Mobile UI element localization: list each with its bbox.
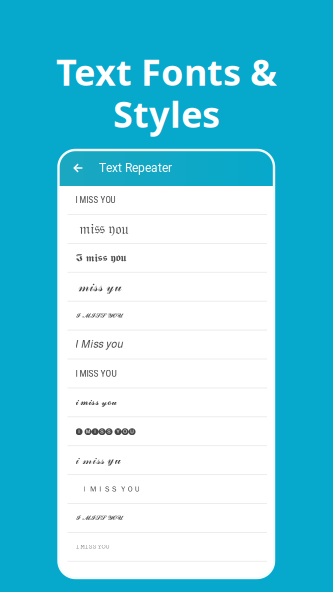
staticText: I MISS YOU <box>75 195 115 205</box>
button[interactable]: I MISS YOU <box>58 359 274 388</box>
button[interactable]: I MISS YOU <box>58 186 274 215</box>
staticText: 𝐼 𝑀𝑖𝑠𝑠 𝑦𝑜𝑢 <box>75 339 123 350</box>
staticText: 🅘 🅜🅘🅢🅢 🅨🅞🅤 <box>75 428 135 435</box>
staticText: 𝒤 𝓂𝒾𝓈𝓈 𝓎𝓄𝓊 <box>75 280 121 294</box>
button[interactable]: 𝒤 𝓂𝒾𝓈𝓈 𝓎𝓄𝓊 <box>58 273 274 302</box>
staticText: 𝔌 𝔪𝔦𝔰𝔰 𝔶𝔬𝔲 <box>75 221 128 237</box>
button[interactable]: 𝓘 𝓜𝓘𝓢𝓢 𝓨𝓞𝓤 <box>58 504 274 533</box>
staticText: Text Fonts & <box>56 48 277 96</box>
staticText: 𝙸 𝙼𝙸𝚂𝚂 𝚈𝙾𝚄 <box>75 544 109 550</box>
button[interactable]: 🅘 🅜🅘🅢🅢 🅨🅞🅤 <box>58 417 274 446</box>
button[interactable]: 𝐼 𝑀𝑖𝑠𝑠 𝑦𝑜𝑢 <box>58 330 274 359</box>
button[interactable]: 𝒾 𝓂𝒾𝓈𝓈 𝓎𝓄𝓊 <box>58 446 274 475</box>
button[interactable]: 𝓲 𝓶𝓲𝓼𝓼 𝔂𝓸𝓾 <box>58 388 274 417</box>
staticText: 𝓘 𝓜𝓘𝓢𝓢 𝓨𝓞𝓤 <box>75 312 122 319</box>
staticText: 𝓲 𝓶𝓲𝓼𝓼 𝔂𝓸𝓾 <box>75 398 116 407</box>
button[interactable]: Ｉ ＭＩＳＳ ＹＯＵ <box>58 475 274 504</box>
button[interactable]: 𝓘 𝓜𝓘𝓢𝓢 𝓨𝓞𝓤 <box>58 302 274 330</box>
staticText: Styles <box>113 90 220 138</box>
button[interactable]: 𝙸 𝙼𝙸𝚂𝚂 𝚈𝙾𝚄 <box>58 533 274 562</box>
button[interactable]: Back <box>58 150 99 186</box>
staticText: 𝕴 𝖒𝖎𝖘𝖘 𝖞𝖔𝖚 <box>75 252 126 264</box>
button[interactable]: 𝕴 𝖒𝖎𝖘𝖘 𝖞𝖔𝖚 <box>58 244 274 273</box>
staticText: Text Repeater <box>99 161 172 175</box>
staticText: 𝓘 𝓜𝓘𝓢𝓢 𝓨𝓞𝓤 <box>75 514 122 521</box>
staticText: I MISS YOU <box>75 368 116 379</box>
staticText: 𝒾 𝓂𝒾𝓈𝓈 𝓎𝓄𝓊 <box>75 454 120 466</box>
button[interactable]: 𝔌 𝔪𝔦𝔰𝔰 𝔶𝔬𝔲 <box>58 215 274 244</box>
staticText: Ｉ ＭＩＳＳ ＹＯＵ <box>80 484 140 494</box>
